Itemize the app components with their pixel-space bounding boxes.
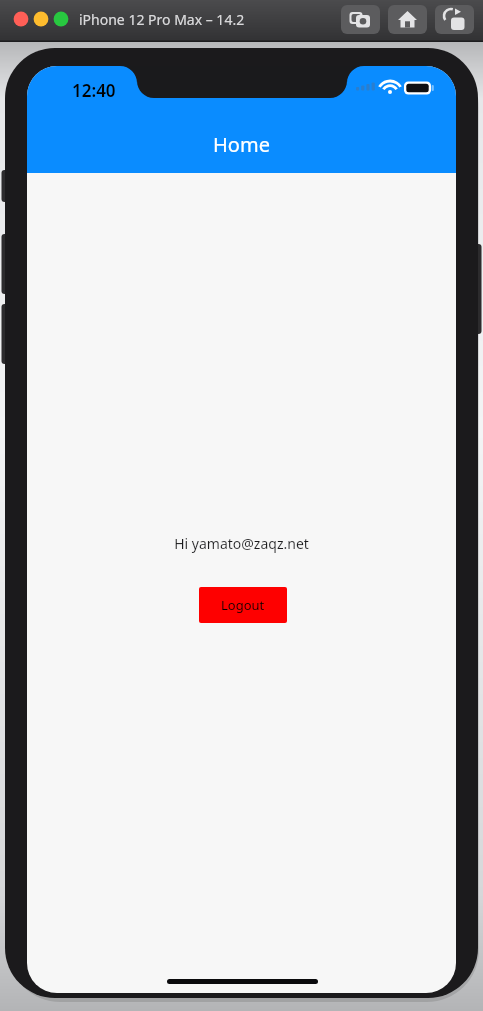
staticText: Hi yamato@zaqz.net [27,534,456,553]
staticText: Logout [221,596,265,614]
staticText: 12:40 [72,79,116,102]
button[interactable]: Logout [199,587,287,623]
staticText: Home [213,131,270,158]
other: Home indicator [167,979,318,984]
staticText: iPhone 12 Pro Max – 14.2 [79,10,245,29]
